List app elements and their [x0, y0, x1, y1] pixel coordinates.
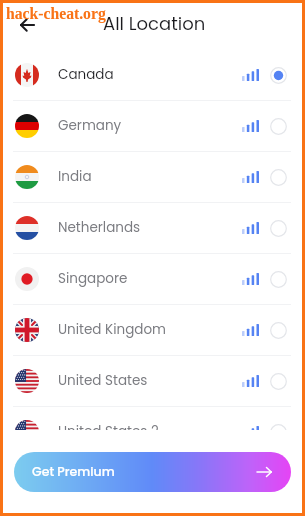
button[interactable]: United States 2: [0, 407, 305, 430]
staticText: United Kingdom: [58, 320, 166, 339]
button[interactable]: Get Premium: [14, 452, 291, 492]
staticText: hack-cheat.org: [6, 5, 106, 22]
staticText: Canada: [58, 65, 114, 84]
button[interactable]: Back: [12, 10, 42, 40]
button[interactable]: Netherlands: [0, 203, 305, 253]
button[interactable]: United States: [0, 356, 305, 406]
button[interactable]: India: [0, 152, 305, 202]
button[interactable]: United Kingdom: [0, 305, 305, 355]
staticText: Germany: [58, 116, 122, 135]
button[interactable]: Singapore: [0, 254, 305, 304]
button[interactable]: Germany: [0, 101, 305, 151]
staticText: Netherlands: [58, 218, 141, 237]
staticText: India: [58, 167, 92, 186]
staticText: United States: [58, 371, 148, 390]
staticText: All Location: [103, 11, 206, 36]
staticText: Get Premium: [32, 463, 115, 480]
staticText: Singapore: [58, 269, 128, 288]
button[interactable]: Canada: [0, 50, 305, 100]
staticText: United States 2: [58, 422, 159, 430]
